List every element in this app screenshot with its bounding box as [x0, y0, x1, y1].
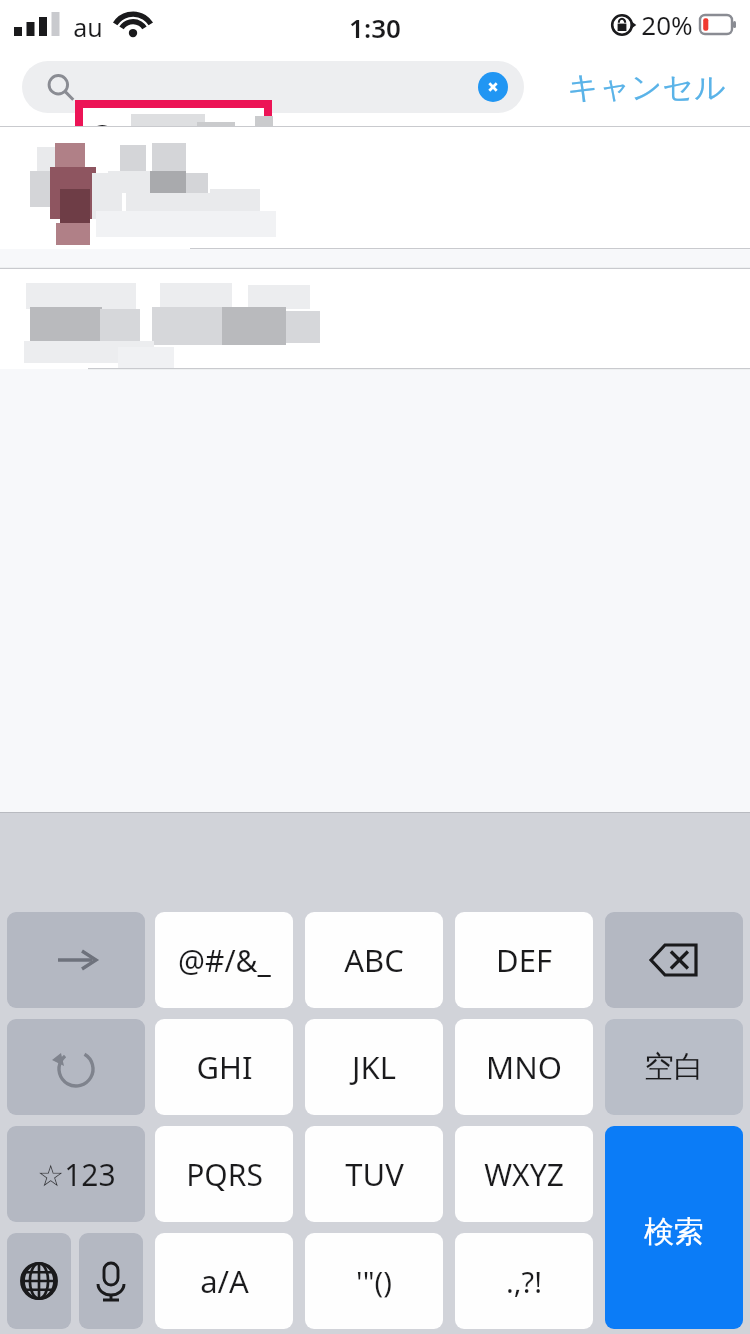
- staticText: ABC: [344, 939, 404, 981]
- button[interactable]: WXYZ: [455, 1126, 593, 1222]
- button[interactable]: a/A: [155, 1233, 293, 1329]
- staticText: TUV: [345, 1153, 404, 1195]
- button[interactable]: [0, 127, 750, 249]
- staticText: JKL: [352, 1046, 396, 1088]
- staticText: MNO: [486, 1046, 562, 1088]
- button[interactable]: 検索: [605, 1126, 743, 1329]
- staticText: DEF: [496, 939, 552, 981]
- staticText: GHI: [196, 1046, 253, 1088]
- staticText: @t: [88, 115, 126, 156]
- button[interactable]: ☆123: [7, 1126, 145, 1222]
- staticText: WXYZ: [484, 1154, 564, 1195]
- staticText: ☆123: [37, 1154, 116, 1195]
- button[interactable]: Voice input: [79, 1233, 143, 1329]
- button[interactable]: GHI: [155, 1019, 293, 1115]
- button[interactable]: ABC: [305, 912, 443, 1008]
- staticText: PQRS: [186, 1154, 263, 1195]
- button[interactable]: 空白: [605, 1019, 743, 1115]
- button[interactable]: [0, 269, 750, 369]
- staticText: 20%: [641, 7, 693, 42]
- button[interactable]: Undo: [7, 1019, 145, 1115]
- button[interactable]: MNO: [455, 1019, 593, 1115]
- button[interactable]: DEF: [455, 912, 593, 1008]
- staticText: 1:30: [349, 10, 401, 45]
- staticText: a/A: [200, 1260, 249, 1302]
- staticText: キャンセル: [567, 68, 726, 107]
- staticText: .,?!: [506, 1262, 542, 1301]
- button[interactable]: Clear text: [478, 72, 508, 102]
- staticText: 検索: [644, 1213, 704, 1251]
- staticText: '"(): [356, 1262, 392, 1301]
- staticText: @#/&_: [178, 940, 271, 981]
- staticText: au: [73, 10, 103, 44]
- button[interactable]: '"(): [305, 1233, 443, 1329]
- button[interactable]: .,?!: [455, 1233, 593, 1329]
- button[interactable]: JKL: [305, 1019, 443, 1115]
- button[interactable]: Delete: [605, 912, 743, 1008]
- button[interactable]: PQRS: [155, 1126, 293, 1222]
- button[interactable]: Next candidate: [7, 912, 145, 1008]
- button[interactable]: TUV: [305, 1126, 443, 1222]
- button[interactable]: キャンセル: [561, 60, 732, 115]
- staticText: 空白: [644, 1048, 704, 1086]
- button[interactable]: @#/&_: [155, 912, 293, 1008]
- button[interactable]: Switch keyboard: [7, 1233, 71, 1329]
- button[interactable]: Clear text: [22, 61, 524, 113]
